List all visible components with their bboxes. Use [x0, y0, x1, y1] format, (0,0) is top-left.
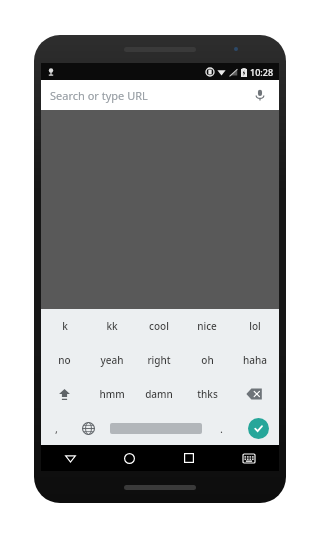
button[interactable]: , [41, 411, 71, 445]
button[interactable]: Switch keyboard [219, 445, 279, 471]
staticText: haha [243, 353, 267, 367]
button[interactable]: Home [100, 445, 159, 471]
staticText: hmm [99, 387, 125, 401]
staticText: right [147, 353, 171, 367]
staticText: , [55, 421, 58, 436]
button[interactable]: right [135, 343, 183, 377]
button[interactable]: Voice search [250, 85, 270, 105]
staticText: oh [201, 353, 214, 367]
button[interactable]: Recent apps [159, 445, 219, 471]
button[interactable]: Search or type URL [41, 80, 279, 110]
button[interactable]: k [41, 309, 88, 343]
staticText: cool [149, 319, 169, 333]
button[interactable]: Shift [41, 377, 88, 411]
button[interactable]: thks [183, 377, 231, 411]
button[interactable]: lol [231, 309, 279, 343]
button[interactable]: hmm [88, 377, 135, 411]
button[interactable]: Back [41, 445, 100, 471]
staticText: lol [249, 319, 261, 333]
button[interactable]: . [206, 411, 237, 445]
staticText: yeah [100, 353, 124, 367]
staticText: nice [197, 319, 217, 333]
staticText: thks [197, 387, 218, 401]
button[interactable]: kk [88, 309, 135, 343]
button[interactable]: Space [106, 411, 206, 445]
staticText: kk [106, 319, 118, 333]
button[interactable]: haha [231, 343, 279, 377]
staticText: Search or type URL [50, 88, 148, 103]
button[interactable]: cool [135, 309, 183, 343]
button[interactable]: oh [183, 343, 231, 377]
button[interactable]: damn [135, 377, 183, 411]
staticText: damn [145, 387, 173, 401]
button[interactable]: Backspace [231, 377, 279, 411]
button[interactable]: nice [183, 309, 231, 343]
staticText: k [62, 319, 68, 333]
staticText: no [58, 353, 71, 367]
button[interactable]: Change language [71, 411, 106, 445]
staticText: . [220, 421, 223, 436]
button[interactable]: yeah [88, 343, 135, 377]
button[interactable]: Done [237, 411, 279, 445]
button[interactable]: no [41, 343, 88, 377]
staticText: 10:28 [250, 66, 274, 78]
